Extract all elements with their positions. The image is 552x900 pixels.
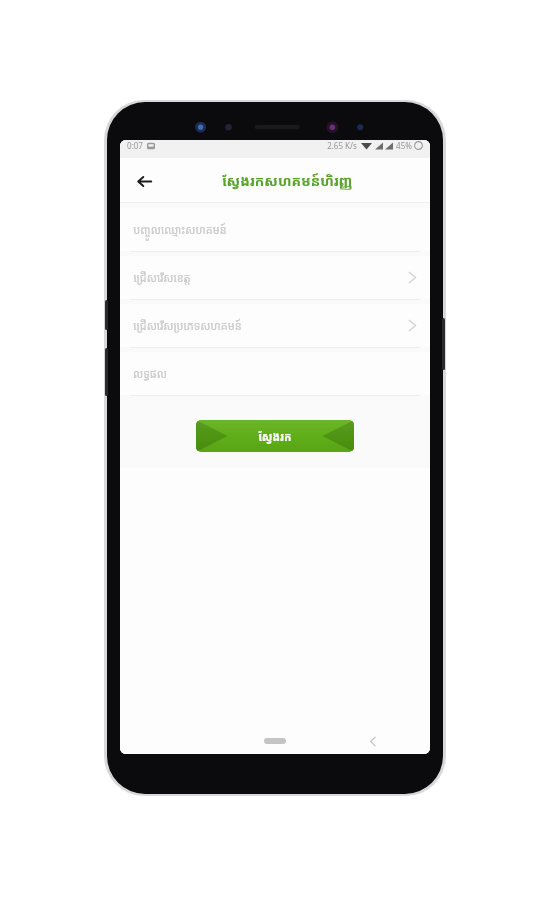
- staticText: ជ្រើសរើសប្រភេទសហគមន៍: [133, 318, 242, 333]
- button[interactable]: លទ្ធផល: [120, 352, 430, 395]
- staticText: 45%: [396, 140, 412, 151]
- staticText: 0:07: [127, 140, 143, 151]
- button[interactable]: បញ្ចូលឈ្មោះសហគមន៍: [120, 208, 430, 251]
- button[interactable]: ជ្រើសរើសប្រភេទសហគមន៍: [120, 304, 430, 347]
- staticText: 2.65 K/s: [327, 140, 357, 151]
- staticText: ជ្រើសរើសខេត្ត: [133, 270, 191, 285]
- button[interactable]: ជ្រើសរើសខេត្ត: [120, 256, 430, 299]
- button[interactable]: ស្វែងរក: [196, 420, 354, 452]
- button[interactable]: Home: [264, 738, 286, 744]
- staticText: ស្វែងរកសហគមន៍ហិរញ្ញ: [222, 171, 353, 190]
- staticText: លទ្ធផល: [133, 366, 167, 381]
- staticText: បញ្ចូលឈ្មោះសហគមន៍: [133, 222, 227, 237]
- staticText: ស្វែងរក: [258, 429, 292, 444]
- button[interactable]: Back: [126, 163, 162, 199]
- button[interactable]: Back: [364, 732, 382, 750]
